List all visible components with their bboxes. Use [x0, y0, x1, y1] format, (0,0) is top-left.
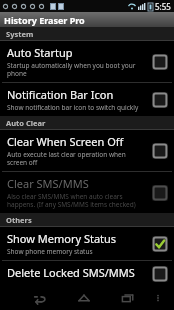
staticText: Notification Bar Icon [7, 87, 114, 102]
button[interactable]: Auto Startup [0, 41, 174, 82]
button[interactable]: Unchecked [152, 266, 168, 282]
staticText: History Eraser Pro [4, 14, 85, 26]
button[interactable]: Unchecked [152, 143, 168, 159]
button[interactable]: Unchecked [152, 92, 168, 108]
staticText: Clear When Screen Off [7, 134, 124, 149]
staticText: Also clear SMS/MMS when auto clears happ… [7, 192, 146, 209]
button[interactable]: Back [18, 286, 62, 310]
staticText: System [6, 29, 34, 39]
button[interactable]: Checked [152, 236, 168, 252]
staticText: 5:55 [155, 1, 171, 12]
button[interactable]: Delete Locked SMS/MMS [0, 261, 174, 286]
button[interactable]: Clear When Screen Off [0, 130, 174, 171]
staticText: Auto execute last clear operation when s… [7, 150, 146, 167]
button[interactable]: Home [62, 286, 106, 310]
button[interactable]: Show Memory Status [0, 227, 174, 260]
staticText: Startup automatically when you boot your… [7, 61, 146, 78]
staticText: Auto Clear [6, 118, 46, 128]
staticText: Auto Startup [7, 45, 73, 60]
staticText: Show Memory Status [7, 231, 117, 246]
button[interactable]: More options [150, 286, 166, 310]
staticText: Others [6, 215, 32, 225]
button[interactable]: Unchecked [152, 54, 168, 70]
staticText: Clear SMS/MMS [7, 176, 89, 191]
staticText: Delete Locked SMS/MMS [7, 265, 135, 280]
staticText: Show notification bar icon to switch qui… [7, 103, 139, 112]
button[interactable]: Clear SMS/MMS [0, 172, 174, 213]
button[interactable]: Recent apps [106, 286, 150, 310]
button[interactable]: Notification Bar Icon [0, 83, 174, 116]
staticText: Show phone memory status [7, 247, 93, 256]
button[interactable]: Unchecked [152, 185, 168, 201]
